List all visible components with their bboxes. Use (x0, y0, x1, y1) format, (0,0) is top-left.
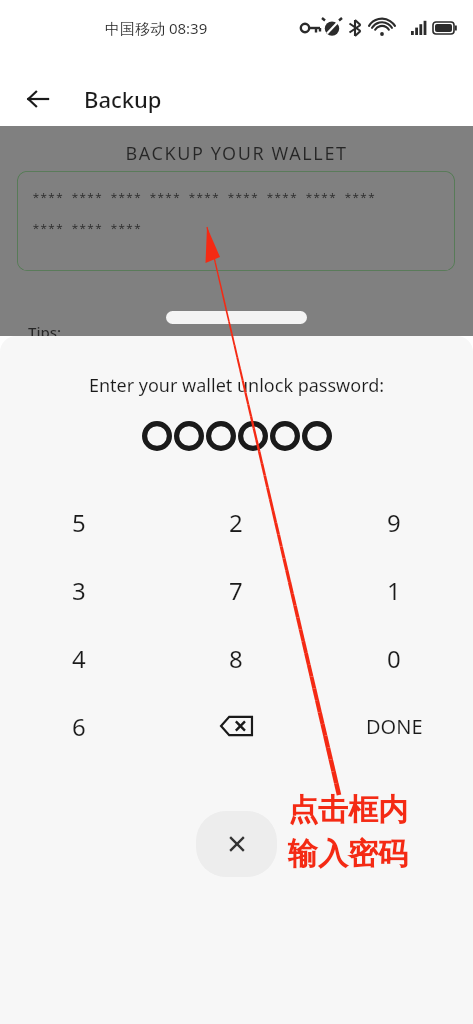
staticText: 输入密码 (288, 835, 408, 873)
button[interactable]: 2 (157, 488, 315, 556)
staticText: 9 (387, 506, 401, 539)
staticText: BACKUP YOUR WALLET (0, 141, 473, 166)
staticText: Tips: (28, 322, 62, 342)
button[interactable]: Close (196, 811, 277, 877)
button[interactable]: Back (14, 75, 62, 123)
staticText: Backup (84, 84, 162, 114)
staticText: **** **** **** **** **** **** **** **** … (32, 189, 376, 207)
staticText: 1 (387, 574, 401, 607)
button[interactable]: 6 (0, 692, 157, 760)
staticText: 7 (229, 574, 243, 607)
staticText: 6 (72, 710, 86, 743)
staticText: 8 (229, 642, 243, 675)
staticText: 4 (72, 642, 86, 675)
button[interactable]: DONE (315, 692, 473, 760)
staticText: DONE (366, 713, 423, 740)
staticText: 0 (387, 642, 401, 675)
button[interactable]: 7 (157, 556, 315, 624)
staticText: **** **** **** (32, 220, 142, 238)
button[interactable]: 0 (315, 624, 473, 692)
button[interactable]: 9 (315, 488, 473, 556)
staticText: Enter your wallet unlock password: (0, 373, 473, 398)
button[interactable]: Backspace (157, 692, 315, 760)
staticText: 3 (72, 574, 86, 607)
button[interactable]: 1 (315, 556, 473, 624)
staticText: 5 (72, 506, 86, 539)
staticText: 2 (229, 506, 243, 539)
button[interactable]: 3 (0, 556, 157, 624)
staticText: 点击框内 (288, 791, 408, 829)
button[interactable]: 5 (0, 488, 157, 556)
button[interactable]: 8 (157, 624, 315, 692)
staticText: 中国移动 08:39 (105, 18, 208, 38)
button[interactable]: 4 (0, 624, 157, 692)
